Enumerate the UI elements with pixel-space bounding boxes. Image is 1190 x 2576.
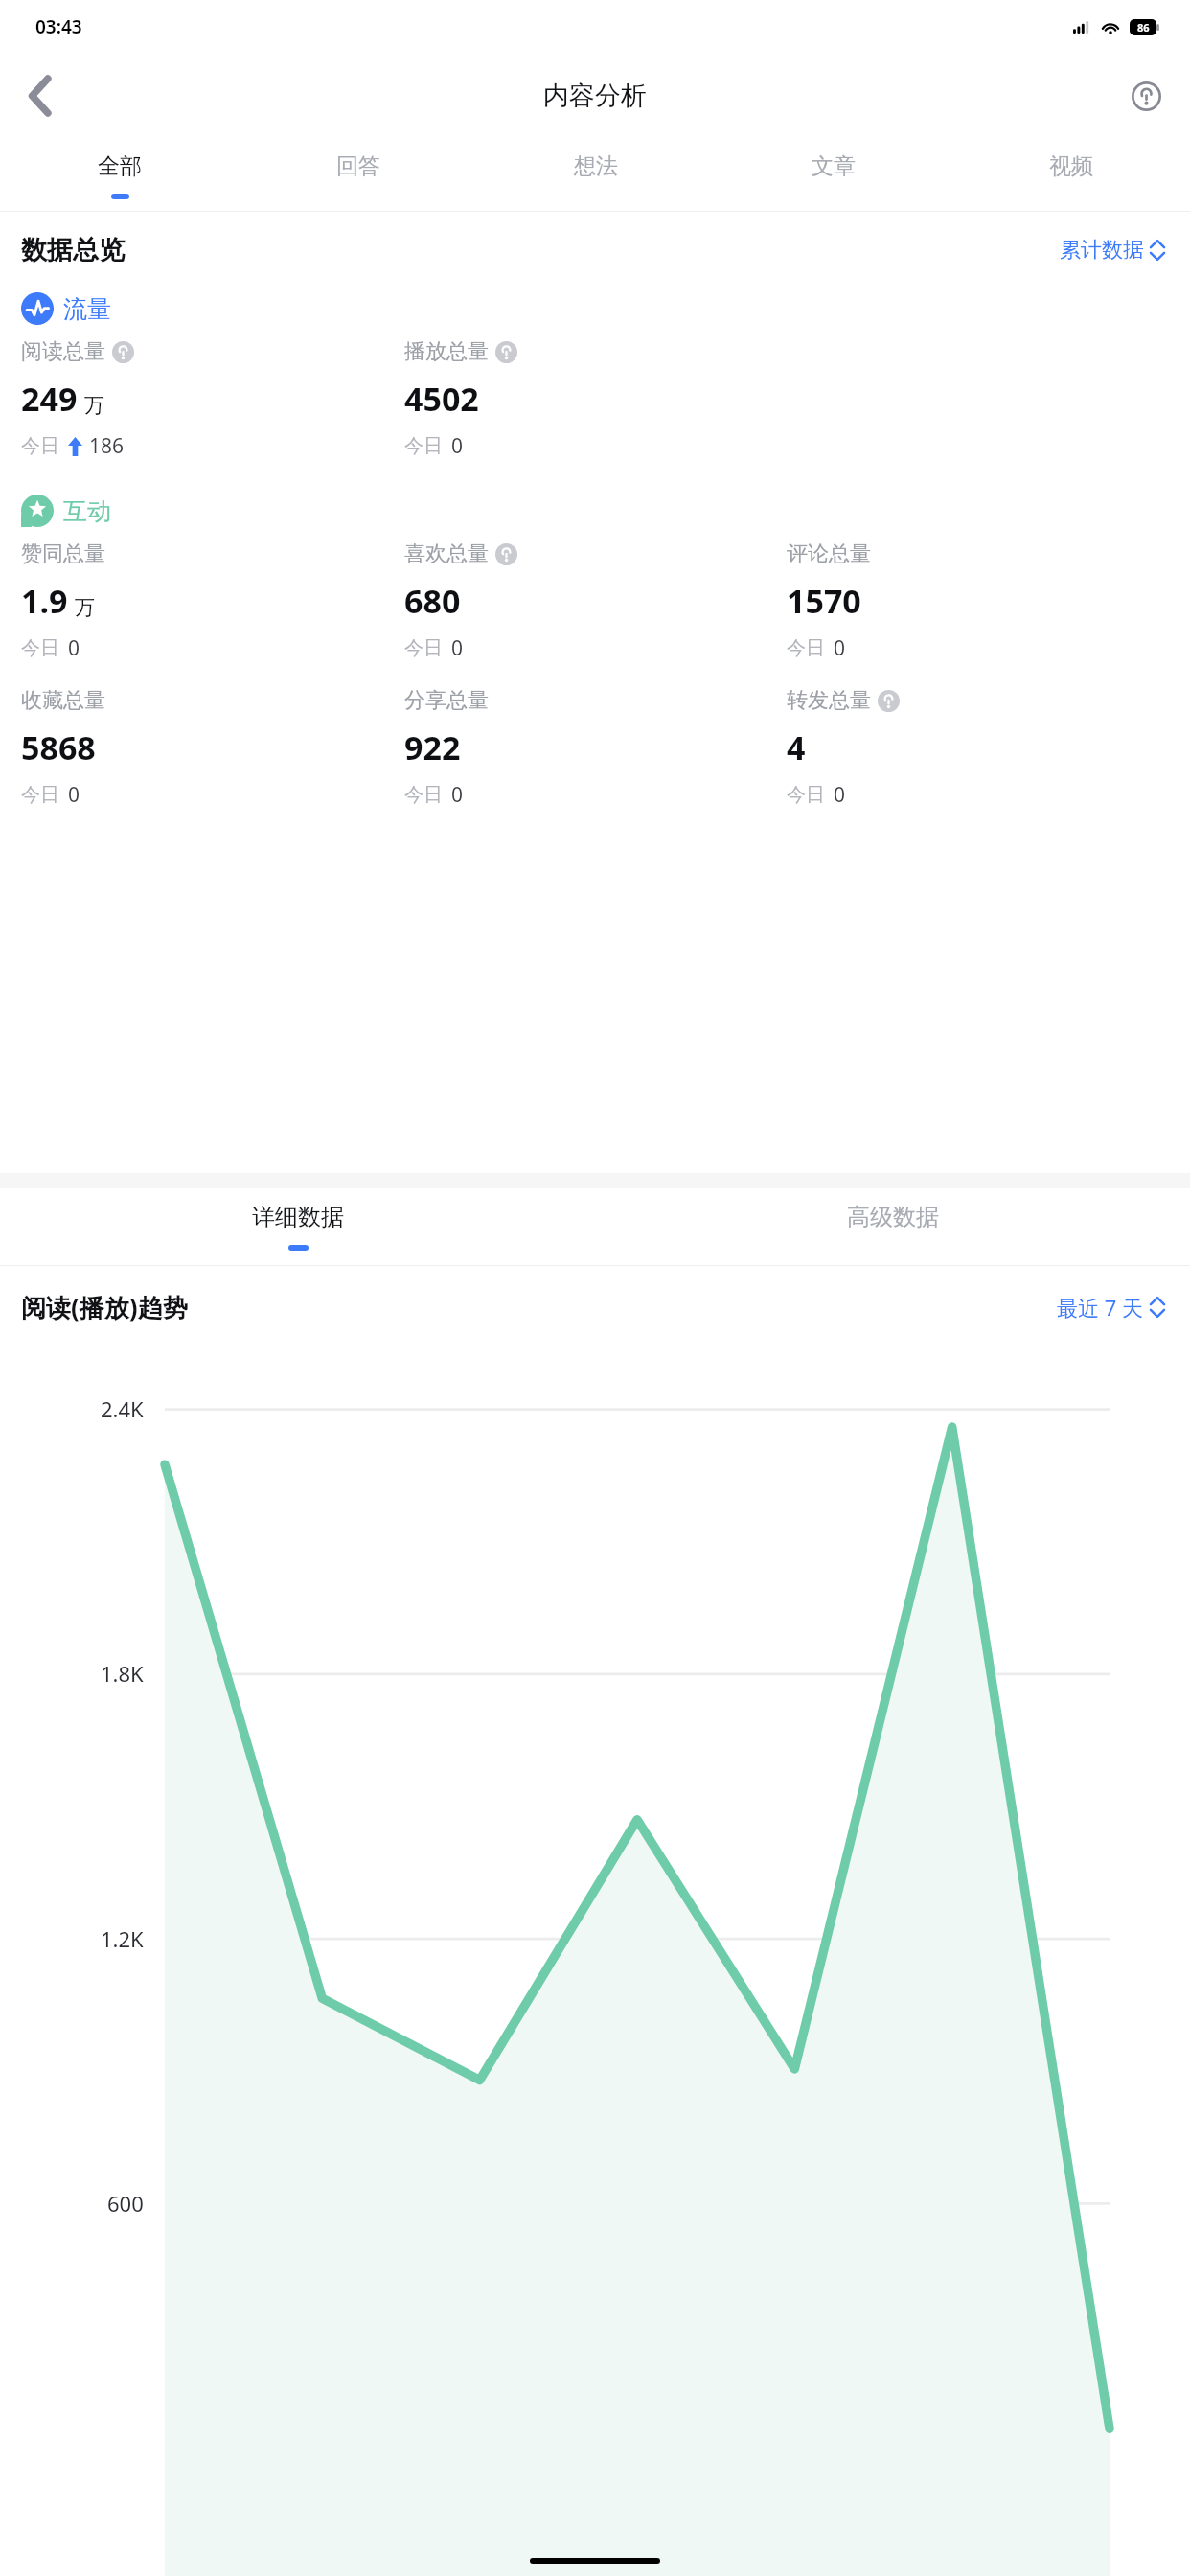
staticText: 0 — [451, 634, 464, 662]
staticText: 阅读(播放)趋势 — [21, 1290, 188, 1324]
staticText: 喜欢总量 — [404, 540, 489, 567]
staticText: 4502 — [404, 377, 479, 421]
staticText: 万 — [75, 595, 95, 620]
button[interactable]: 高级数据 — [595, 1188, 1190, 1265]
staticText: 2.4K — [101, 1394, 144, 1423]
staticText: 播放总量 — [404, 338, 489, 365]
staticText: 今日 — [404, 636, 443, 660]
staticText: 赞同总量 — [21, 540, 105, 567]
staticText: 收藏总量 — [21, 687, 105, 714]
staticText: 1.8K — [101, 1659, 144, 1688]
staticText: 互动 — [63, 496, 111, 526]
staticText: 5868 — [21, 725, 96, 770]
button[interactable]: 累计数据 — [1056, 233, 1169, 267]
staticText: 0 — [68, 781, 80, 809]
button[interactable]: 全部 — [0, 138, 239, 211]
staticText: 阅读总量 — [21, 338, 105, 365]
staticText: 内容分析 — [543, 80, 647, 112]
staticText: 0 — [68, 634, 80, 662]
staticText: 0 — [834, 781, 846, 809]
staticText: 今日 — [21, 636, 59, 660]
button[interactable]: 阅读总量 — [21, 338, 404, 460]
button[interactable]: 想法 — [477, 138, 715, 211]
staticText: 0 — [451, 781, 464, 809]
button[interactable]: 最近 7 天 — [1053, 1289, 1169, 1325]
staticText: 今日 — [21, 783, 59, 807]
staticText: 0 — [451, 432, 464, 460]
staticText: 最近 7 天 — [1057, 1293, 1144, 1322]
button[interactable]: Back — [11, 68, 67, 124]
button[interactable]: 详细数据 — [0, 1188, 595, 1265]
staticText: 86 — [1137, 20, 1150, 34]
button[interactable]: 评论总量 — [787, 540, 1169, 662]
staticText: 累计数据 — [1060, 237, 1144, 264]
staticText: 文章 — [812, 152, 856, 180]
staticText: 今日 — [787, 783, 825, 807]
button[interactable]: 赞同总量 — [21, 540, 404, 662]
button[interactable]: Help — [1119, 69, 1173, 123]
staticText: 分享总量 — [404, 687, 489, 714]
staticText: 想法 — [574, 152, 618, 180]
button[interactable]: 收藏总量 — [21, 687, 404, 809]
staticText: 1570 — [787, 579, 861, 623]
staticText: 03:43 — [35, 14, 82, 39]
staticText: 922 — [404, 725, 461, 770]
staticText: 评论总量 — [787, 540, 871, 567]
staticText: 600 — [107, 2189, 144, 2218]
staticText: 今日 — [404, 783, 443, 807]
staticText: 全部 — [98, 152, 142, 180]
button[interactable]: 喜欢总量 — [404, 540, 787, 662]
button[interactable]: 文章 — [715, 138, 952, 211]
staticText: 回答 — [336, 152, 380, 180]
staticText: 1.9 — [21, 579, 68, 623]
staticText: 高级数据 — [847, 1203, 939, 1231]
button[interactable]: 转发总量 — [787, 687, 1169, 809]
staticText: 4 — [787, 725, 806, 770]
staticText: 0 — [834, 634, 846, 662]
staticText: 186 — [89, 432, 125, 460]
button[interactable]: 回答 — [239, 138, 477, 211]
staticText: 视频 — [1049, 152, 1093, 180]
staticText: 详细数据 — [252, 1203, 344, 1231]
button[interactable]: 视频 — [952, 138, 1190, 211]
staticText: 1.2K — [101, 1924, 144, 1953]
staticText: 680 — [404, 579, 461, 623]
staticText: 流量 — [63, 294, 111, 324]
staticText: 249 — [21, 377, 78, 421]
staticText: 转发总量 — [787, 687, 871, 714]
staticText: 今日 — [21, 434, 59, 458]
staticText: 万 — [84, 393, 104, 418]
staticText: 今日 — [404, 434, 443, 458]
staticText: 今日 — [787, 636, 825, 660]
button[interactable]: 分享总量 — [404, 687, 787, 809]
staticText: 数据总览 — [21, 234, 125, 266]
button[interactable]: 播放总量 — [404, 338, 787, 460]
